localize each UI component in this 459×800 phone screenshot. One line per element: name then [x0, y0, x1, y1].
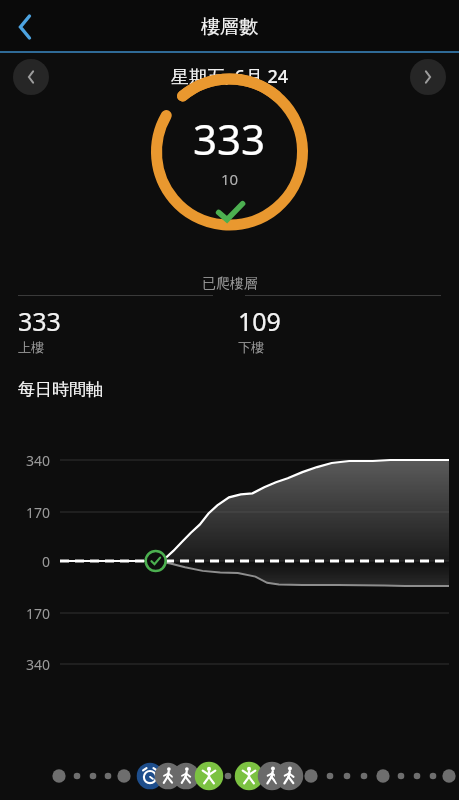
staticText: 0 — [0, 552, 50, 571]
staticText: 109 — [238, 304, 281, 338]
button[interactable]: 109 — [238, 304, 459, 355]
staticText: 333 — [193, 110, 266, 167]
staticText: 已爬樓層 — [202, 275, 258, 293]
button[interactable]: 333 — [18, 304, 238, 355]
button[interactable]: Previous day — [13, 59, 49, 95]
button[interactable]: Back — [0, 3, 48, 51]
button[interactable]: Activity timeline — [0, 762, 459, 800]
staticText: 170 — [0, 604, 50, 623]
staticText: 下樓 — [238, 339, 264, 355]
staticText: 樓層數 — [201, 15, 258, 39]
staticText: 340 — [0, 655, 50, 674]
button[interactable]: Next day — [410, 59, 446, 95]
staticText: 340 — [0, 451, 50, 470]
staticText: 170 — [0, 503, 50, 522]
staticText: 333 — [18, 304, 61, 338]
staticText: 星期五, 6月 24 — [171, 64, 289, 89]
staticText: 10 — [221, 169, 239, 189]
staticText: 上樓 — [18, 339, 44, 355]
staticText: 每日時間軸 — [18, 379, 103, 400]
